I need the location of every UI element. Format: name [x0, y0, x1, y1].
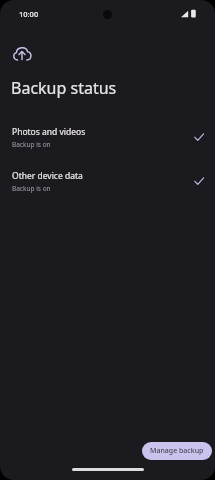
- staticText: Manage backup: [150, 446, 204, 456]
- button[interactable]: Manage backup: [142, 442, 212, 460]
- staticText: Backup is on: [12, 140, 51, 149]
- staticText: Photos and videos: [12, 126, 86, 138]
- staticText: Backup is on: [12, 184, 51, 193]
- other: Backup enabled: [193, 131, 205, 143]
- button[interactable]: Other device data: [0, 168, 215, 194]
- other: Cloud backup: [12, 45, 32, 62]
- other: Backup enabled: [193, 175, 205, 187]
- button[interactable]: Photos and videos: [0, 124, 215, 150]
- staticText: Other device data: [12, 170, 83, 182]
- staticText: 10:00: [19, 9, 39, 19]
- staticText: Backup status: [11, 77, 117, 99]
